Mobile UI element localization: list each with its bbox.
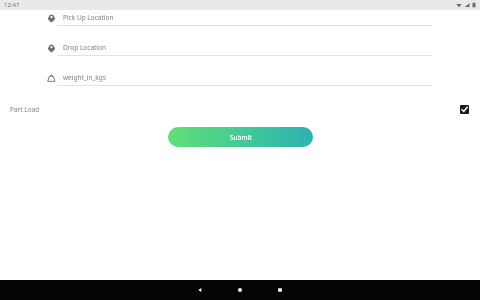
staticText: Drop Location <box>63 43 106 52</box>
staticText: 12:47 <box>4 1 20 9</box>
button[interactable]: Part Load <box>0 99 480 119</box>
button[interactable]: Back <box>180 280 220 300</box>
staticText: weight_in_kgs <box>63 73 106 82</box>
button[interactable]: Submit <box>168 127 313 147</box>
button[interactable]: weight_in_kgs <box>0 56 480 86</box>
button[interactable]: Home <box>220 280 260 300</box>
button[interactable]: Pick Up Location <box>0 10 480 26</box>
staticText: Pick Up Location <box>63 13 114 22</box>
button[interactable]: Part Load checkbox, checked <box>459 104 470 115</box>
staticText: Part Load <box>10 105 40 114</box>
button[interactable]: Drop Location <box>0 26 480 56</box>
button[interactable]: Recent apps <box>260 280 300 300</box>
staticText: Submit <box>230 133 252 142</box>
